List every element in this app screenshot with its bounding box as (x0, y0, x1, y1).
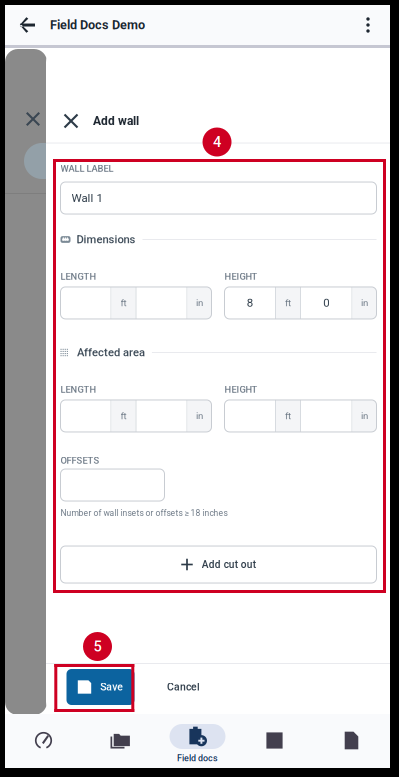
staticText: HEIGHT (224, 271, 257, 282)
staticText: LENGTH (60, 271, 96, 282)
staticText: OFFSETS (60, 455, 99, 466)
staticText: HEIGHT (224, 384, 257, 395)
staticText: LENGTH (60, 384, 96, 395)
staticText: ft (285, 297, 291, 309)
staticText: Cancel (167, 681, 200, 693)
button[interactable]: Add cut out (60, 546, 376, 583)
button[interactable]: Documents (313, 714, 390, 768)
staticText: 8 (247, 296, 253, 310)
staticText: in (361, 410, 368, 422)
button[interactable]: Field docs (159, 714, 236, 768)
staticText: Add cut out (202, 559, 256, 570)
button[interactable]: Cancel (157, 669, 209, 705)
staticText: Dimensions (76, 233, 135, 246)
staticText: Number of wall insets or offsets ≥ 18 in… (60, 508, 227, 518)
staticText: Add wall (93, 114, 139, 128)
staticText: ft (120, 410, 126, 422)
button[interactable]: Back (5, 5, 50, 45)
staticText: Wall 1 (71, 191, 102, 205)
staticText: Field docs (177, 753, 218, 763)
button[interactable]: Calculator (236, 714, 313, 768)
button[interactable]: Dashboard (5, 714, 82, 768)
button[interactable]: Close (49, 99, 93, 143)
button[interactable]: Photos (82, 714, 159, 768)
staticText: 0 (323, 296, 329, 310)
button[interactable]: More options (346, 5, 390, 45)
staticText: ft (285, 410, 291, 422)
staticText: in (361, 297, 368, 309)
staticText: ft (120, 297, 126, 309)
button[interactable]: Save (66, 669, 134, 705)
staticText: 4 (213, 133, 221, 151)
staticText: Field Docs Demo (50, 18, 145, 32)
staticText: in (196, 410, 203, 422)
staticText: in (196, 297, 203, 309)
staticText: Affected area (77, 346, 145, 359)
staticText: WALL LABEL (60, 163, 113, 174)
staticText: 5 (93, 638, 101, 655)
staticText: Save (100, 681, 123, 693)
